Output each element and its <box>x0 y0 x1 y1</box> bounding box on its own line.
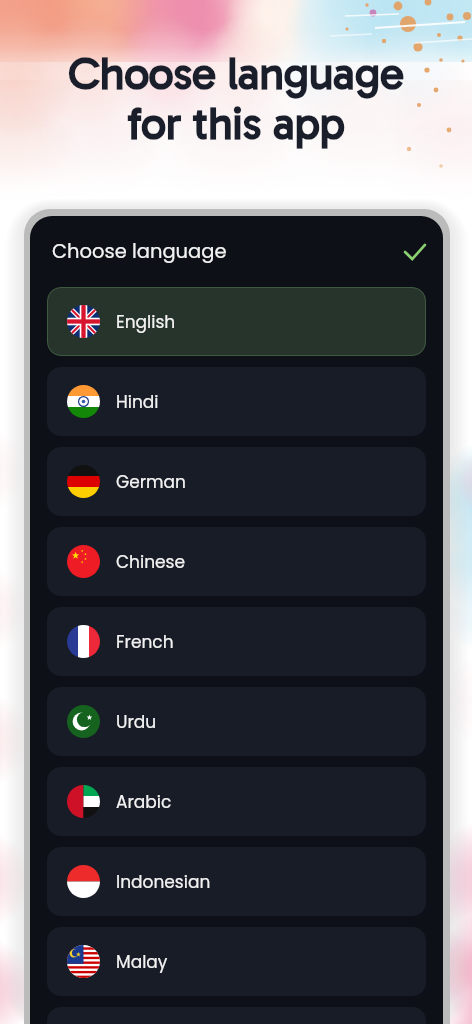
button[interactable]: Hindi <box>47 367 426 436</box>
button[interactable]: French <box>47 607 426 676</box>
button[interactable]: Indonesian <box>47 847 426 916</box>
staticText: Chinese <box>116 550 186 574</box>
staticText: Choose language for this app <box>68 47 404 151</box>
button[interactable]: Confirm selection <box>397 234 433 270</box>
staticText: German <box>116 470 186 494</box>
button[interactable]: Chinese <box>47 527 426 596</box>
button[interactable]: German <box>47 447 426 516</box>
staticText: English <box>116 310 176 334</box>
staticText: Hindi <box>116 390 159 414</box>
staticText: Choose language <box>52 238 227 265</box>
staticText: Indonesian <box>116 870 211 894</box>
button[interactable]: Arabic <box>47 767 426 836</box>
staticText: Arabic <box>116 790 172 814</box>
staticText: French <box>116 630 174 654</box>
staticText: Malay <box>116 950 168 974</box>
button[interactable]: Malay <box>47 927 426 996</box>
staticText: Urdu <box>116 710 157 734</box>
button[interactable]: English <box>47 287 426 356</box>
button[interactable]: Urdu <box>47 687 426 756</box>
